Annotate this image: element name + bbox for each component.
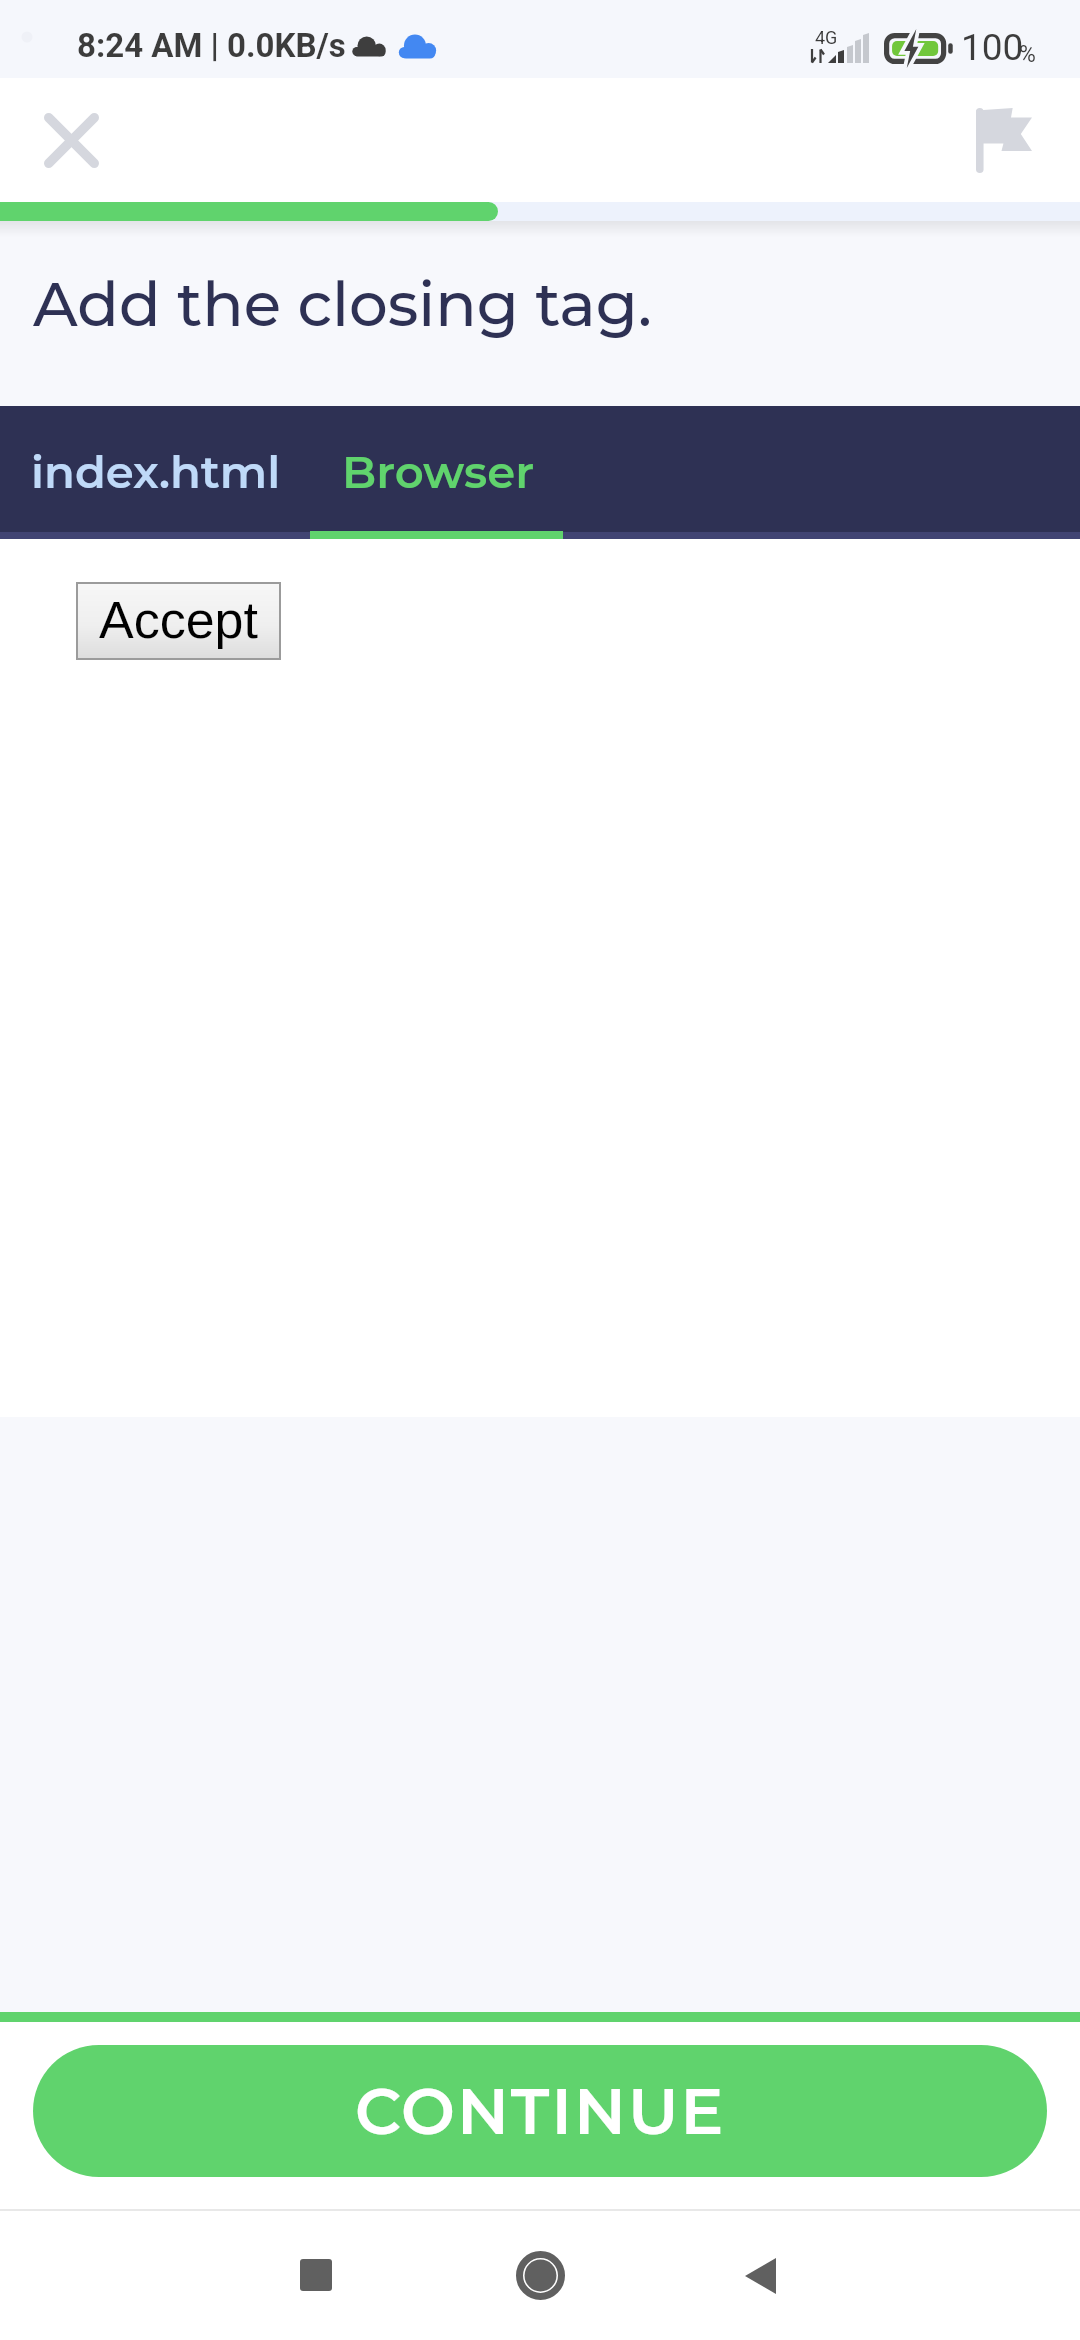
button[interactable]: Recent apps xyxy=(251,2211,381,2340)
button[interactable]: Accept xyxy=(76,582,281,660)
staticText: 100 xyxy=(961,26,1024,69)
staticText: CONTINUE xyxy=(355,2072,726,2150)
staticText: % xyxy=(1019,41,1036,68)
button[interactable]: Close xyxy=(9,78,133,202)
button[interactable]: Back xyxy=(695,2211,825,2340)
button[interactable]: Home xyxy=(475,2211,605,2340)
button[interactable]: Report a problem xyxy=(942,78,1066,202)
button[interactable]: Browser xyxy=(310,406,563,532)
staticText: 4G xyxy=(815,27,838,48)
button[interactable]: CONTINUE xyxy=(33,2045,1047,2177)
staticText: Add the closing tag. xyxy=(33,267,652,341)
staticText: 8:24 AM | 0.0KB/s xyxy=(77,26,346,65)
button[interactable]: index.html xyxy=(0,406,310,532)
staticText: Browser xyxy=(342,444,535,499)
staticText: index.html xyxy=(31,444,281,499)
staticText: Accept xyxy=(99,591,258,649)
